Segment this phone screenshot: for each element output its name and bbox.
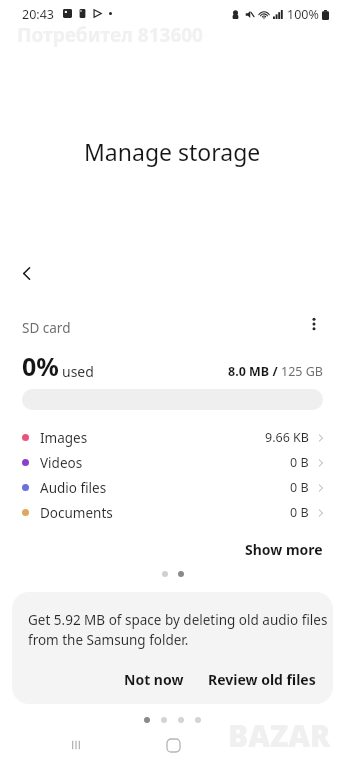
staticText: 0 B	[290, 479, 309, 496]
staticText: Videos	[40, 454, 83, 472]
button[interactable]: Audio files	[0, 475, 345, 500]
staticText: Documents	[40, 504, 113, 522]
button[interactable]: Show more	[0, 537, 345, 561]
staticText: Show more	[245, 540, 323, 559]
button[interactable]: Not now	[112, 662, 196, 697]
staticText: Потребител 813600	[17, 22, 203, 48]
staticText: 0%	[22, 349, 59, 383]
button[interactable]: Images	[0, 425, 345, 450]
button[interactable]: More options	[299, 309, 329, 339]
staticText: BAZAR	[228, 715, 331, 756]
staticText: 0 B	[290, 504, 309, 521]
button[interactable]: Documents	[0, 500, 345, 525]
staticText: Not now	[124, 670, 184, 689]
staticText: 125 GB	[281, 363, 323, 380]
staticText: used	[62, 362, 94, 381]
staticText: 20:43	[22, 6, 54, 23]
staticText: Audio files	[40, 479, 107, 497]
staticText: SD card	[22, 319, 71, 337]
staticText: 100%	[287, 6, 319, 23]
staticText: Get 5.92 MB of space by deleting old aud…	[28, 611, 328, 649]
staticText: Images	[40, 429, 88, 447]
staticText: Manage storage	[84, 136, 261, 167]
button[interactable]: Back	[9, 256, 43, 290]
button[interactable]: Review old files	[196, 662, 328, 697]
staticText: 0 B	[290, 454, 309, 471]
button[interactable]: Home	[154, 726, 192, 764]
staticText: 9.66 KB	[265, 429, 309, 446]
button[interactable]: Videos	[0, 450, 345, 475]
staticText: Review old files	[208, 670, 316, 689]
button[interactable]: Recent apps	[58, 727, 94, 763]
staticText: 8.0 MB /	[228, 363, 281, 380]
